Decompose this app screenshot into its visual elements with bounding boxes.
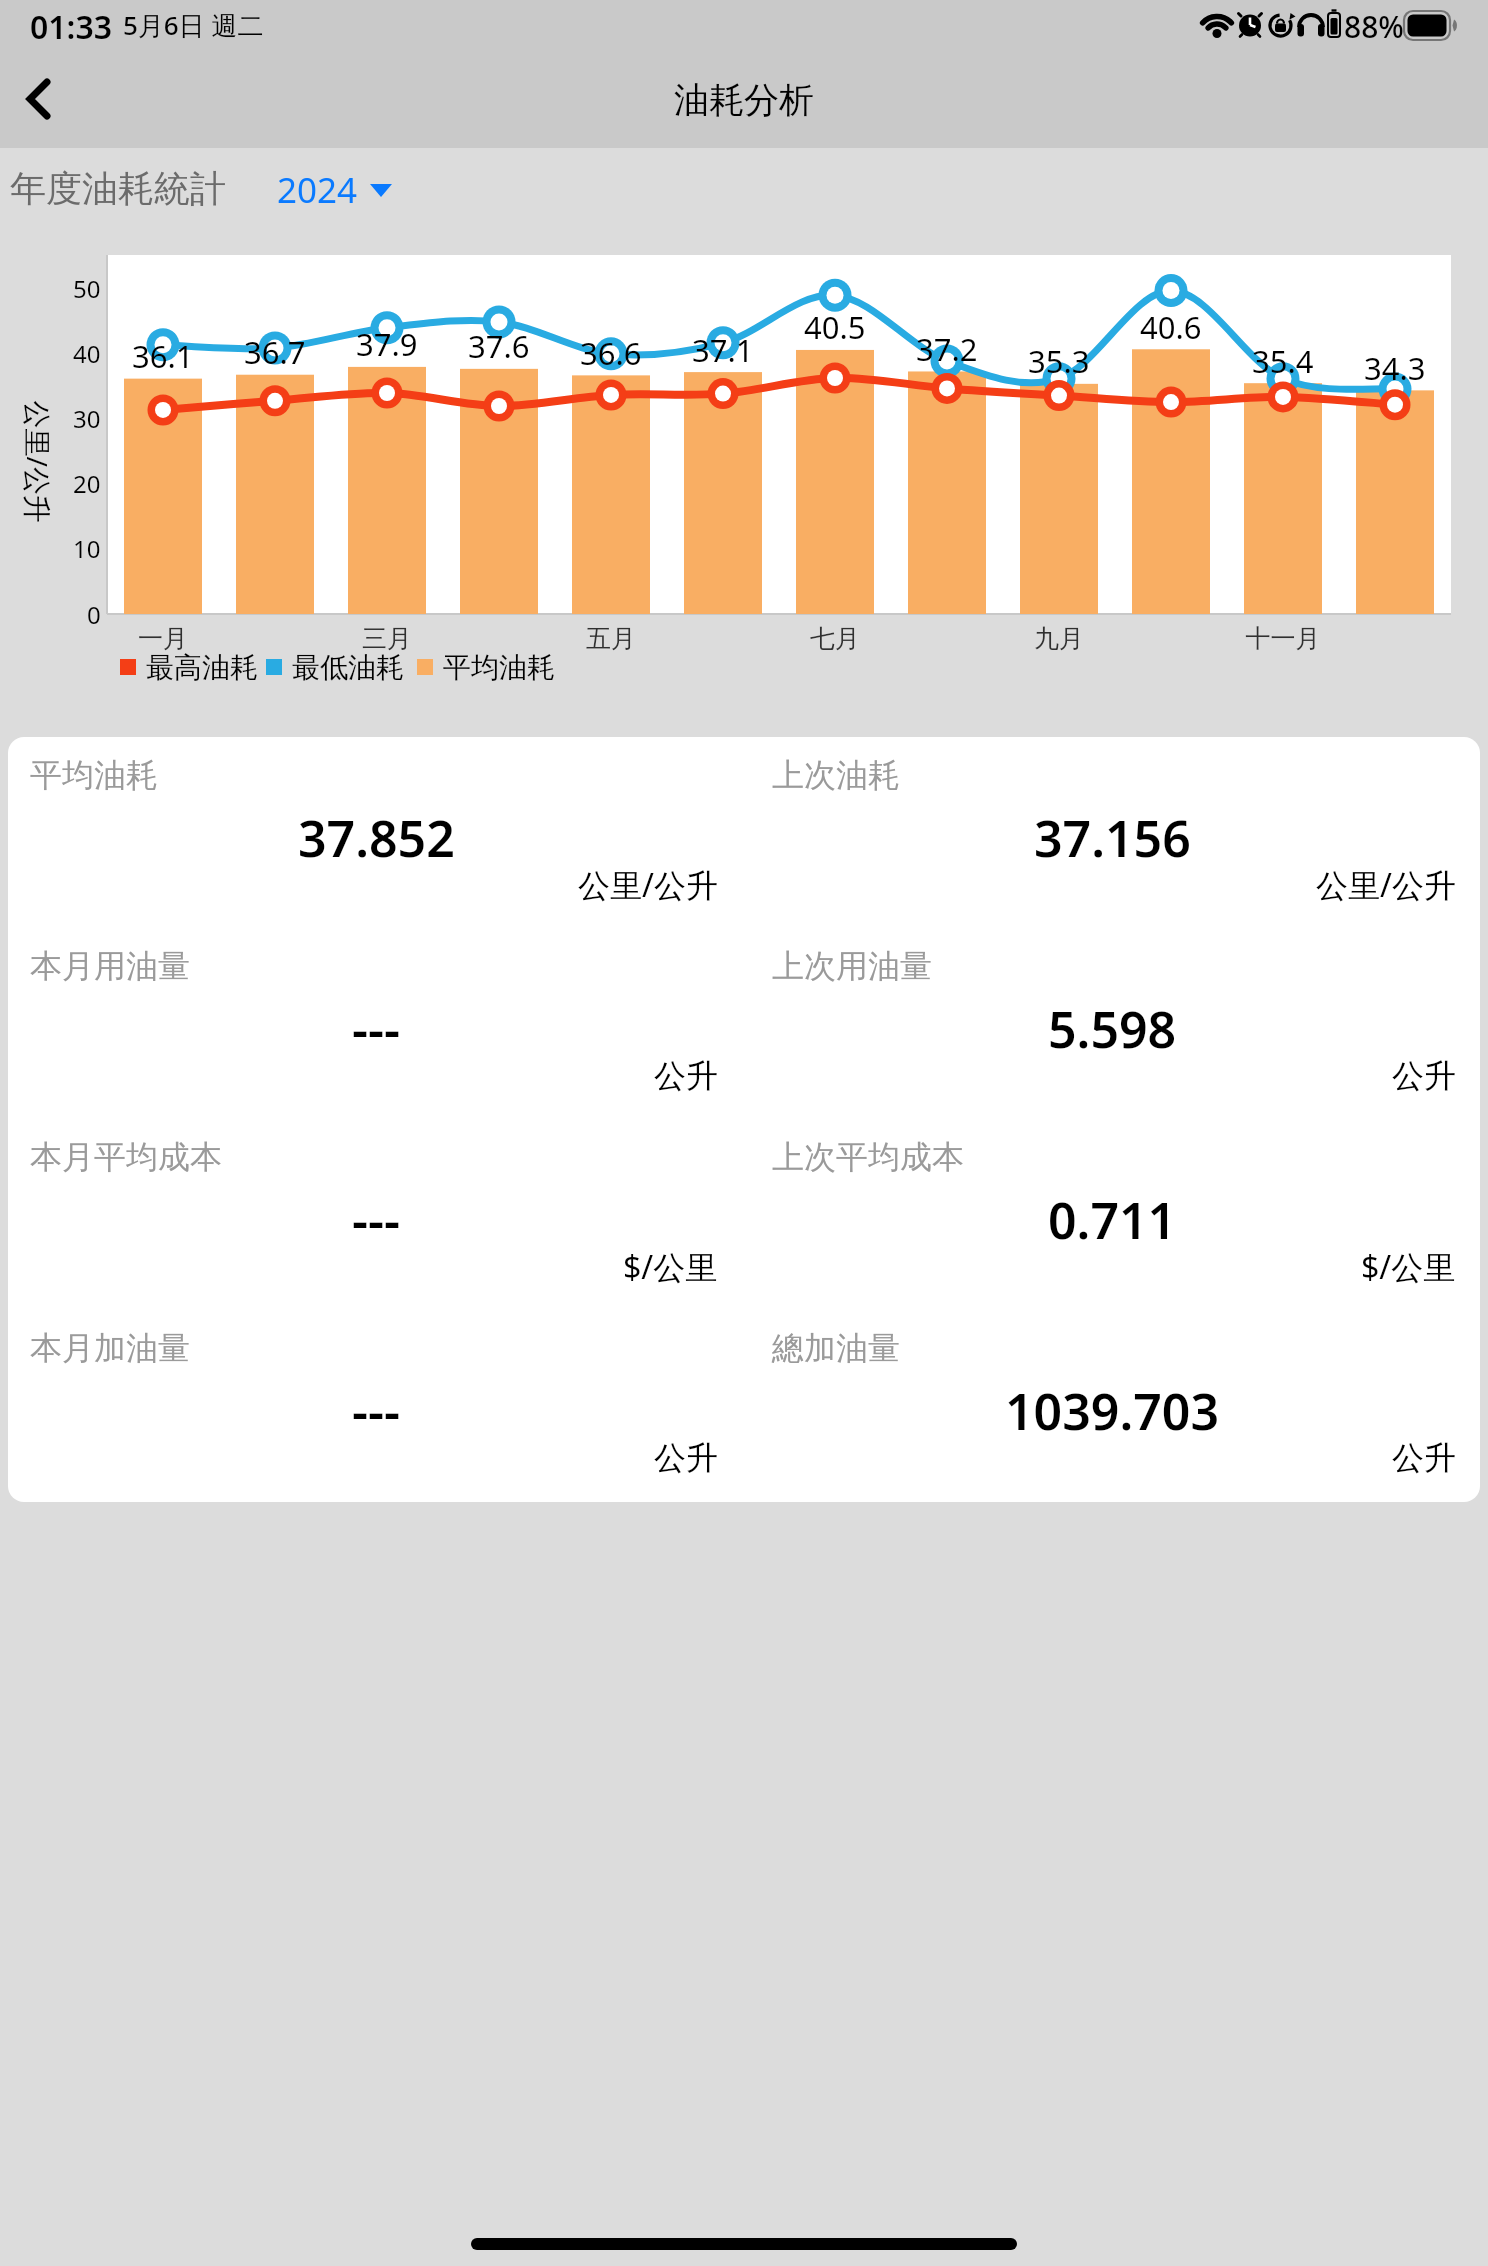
button[interactable]: 總加油量 xyxy=(744,1310,1480,1501)
staticText: 上次用油量 xyxy=(772,946,932,986)
staticText: $/公里 xyxy=(1361,1245,1456,1289)
button[interactable]: 本月平均成本 xyxy=(8,1119,744,1310)
staticText: 本月加油量 xyxy=(30,1328,190,1368)
staticText: 平均油耗 xyxy=(30,755,158,795)
staticText: --- xyxy=(352,1186,400,1246)
staticText: 37.852 xyxy=(298,804,455,864)
staticText: 本月用油量 xyxy=(30,946,190,986)
button[interactable]: 本月加油量 xyxy=(8,1310,744,1501)
button[interactable]: 平均油耗 xyxy=(8,737,744,928)
staticText: 本月平均成本 xyxy=(30,1137,222,1177)
staticText: 5月6日 週二 xyxy=(123,7,264,43)
button[interactable]: 上次用油量 xyxy=(744,928,1480,1119)
staticText: 上次平均成本 xyxy=(772,1137,964,1177)
staticText: 公里/公升 xyxy=(1316,863,1456,907)
button[interactable]: 2024 xyxy=(270,158,400,214)
staticText: 88% xyxy=(1344,6,1404,47)
staticText: 5.598 xyxy=(1048,995,1177,1055)
button[interactable]: 本月用油量 xyxy=(8,928,744,1119)
staticText: 上次油耗 xyxy=(772,755,900,795)
button[interactable]: 上次油耗 xyxy=(744,737,1480,928)
staticText: 總加油量 xyxy=(772,1328,900,1368)
staticText: --- xyxy=(352,1377,400,1437)
staticText: 公升 xyxy=(654,1438,718,1478)
button[interactable] xyxy=(21,76,65,124)
staticText: 年度油耗統計 xyxy=(10,166,226,211)
staticText: 01:33 xyxy=(30,5,113,49)
staticText: --- xyxy=(352,995,400,1055)
staticText: 2024 xyxy=(277,166,358,214)
staticText: 公里/公升 xyxy=(578,863,718,907)
staticText: 1039.703 xyxy=(1005,1377,1219,1437)
staticText: 油耗分析 xyxy=(674,78,814,122)
staticText: 公升 xyxy=(1392,1056,1456,1096)
staticText: 0.711 xyxy=(1048,1186,1177,1246)
staticText: 公升 xyxy=(1392,1438,1456,1478)
button[interactable]: 上次平均成本 xyxy=(744,1119,1480,1310)
staticText: 37.156 xyxy=(1034,804,1191,864)
staticText: $/公里 xyxy=(623,1245,718,1289)
staticText: 公升 xyxy=(654,1056,718,1096)
